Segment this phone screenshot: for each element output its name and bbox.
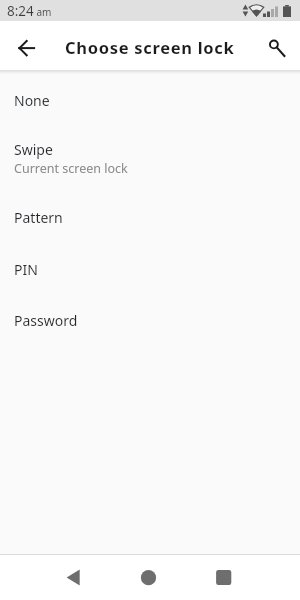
button[interactable]: PIN bbox=[0, 244, 300, 294]
button[interactable]: Password bbox=[0, 294, 300, 346]
button[interactable] bbox=[0, 554, 100, 600]
staticText: None bbox=[14, 91, 50, 110]
staticText: Choose screen lock bbox=[65, 36, 235, 58]
staticText: Swipe bbox=[14, 140, 53, 159]
button[interactable] bbox=[263, 32, 291, 60]
button[interactable]: Pattern bbox=[0, 190, 300, 244]
staticText: Pattern bbox=[14, 208, 63, 227]
button[interactable] bbox=[13, 32, 41, 60]
button[interactable]: Swipe bbox=[0, 126, 300, 190]
staticText: PIN bbox=[14, 260, 38, 279]
staticText: Current screen lock bbox=[14, 160, 128, 177]
staticText: Password bbox=[14, 311, 78, 330]
staticText: 8:24 am bbox=[7, 2, 52, 20]
button[interactable]: None bbox=[0, 74, 300, 126]
button[interactable] bbox=[100, 554, 200, 600]
button[interactable] bbox=[200, 554, 300, 600]
